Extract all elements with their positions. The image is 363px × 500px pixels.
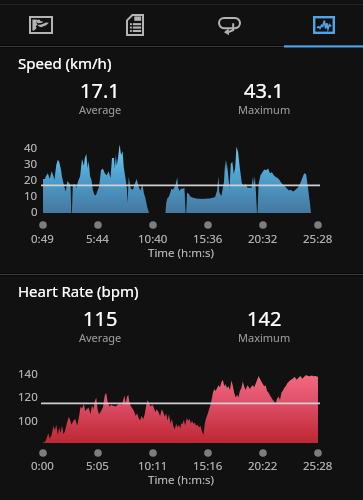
staticText: Speed (km/h): [18, 53, 112, 73]
staticText: Average: [79, 102, 122, 117]
staticText: Time (h:m:s): [148, 472, 215, 488]
staticText: 5:05: [86, 458, 109, 474]
staticText: 0:00: [31, 458, 54, 474]
staticText: 120: [18, 389, 38, 405]
staticText: 25:28: [303, 231, 333, 247]
staticText: Heart Rate (bpm): [18, 281, 139, 301]
staticText: 115: [83, 305, 118, 332]
staticText: Time (h:m:s): [148, 245, 215, 261]
staticText: 43.1: [244, 77, 284, 104]
staticText: 0: [31, 204, 38, 220]
staticText: 15:36: [193, 231, 223, 247]
staticText: 10:40: [138, 231, 168, 247]
staticText: 0:49: [31, 231, 54, 247]
staticText: 20:22: [248, 458, 278, 474]
staticText: Average: [79, 330, 122, 345]
staticText: 10: [24, 188, 38, 204]
staticText: 140: [18, 366, 38, 382]
staticText: 40: [24, 140, 38, 156]
staticText: 5:44: [86, 231, 109, 247]
staticText: 17.1: [80, 77, 120, 104]
staticText: 20: [24, 172, 38, 188]
button[interactable]: Details: [87, 0, 182, 45]
staticText: 10:11: [138, 458, 168, 474]
staticText: 100: [18, 413, 38, 429]
button[interactable]: Map: [0, 0, 88, 45]
staticText: 15:16: [193, 458, 223, 474]
staticText: Maximum: [238, 330, 291, 345]
button[interactable]: Charts: [276, 0, 363, 45]
button[interactable]: Laps: [182, 0, 277, 45]
staticText: 30: [24, 156, 38, 172]
staticText: 25:28: [303, 458, 333, 474]
staticText: 142: [247, 305, 282, 332]
staticText: 20:32: [248, 231, 278, 247]
staticText: Maximum: [238, 102, 291, 117]
